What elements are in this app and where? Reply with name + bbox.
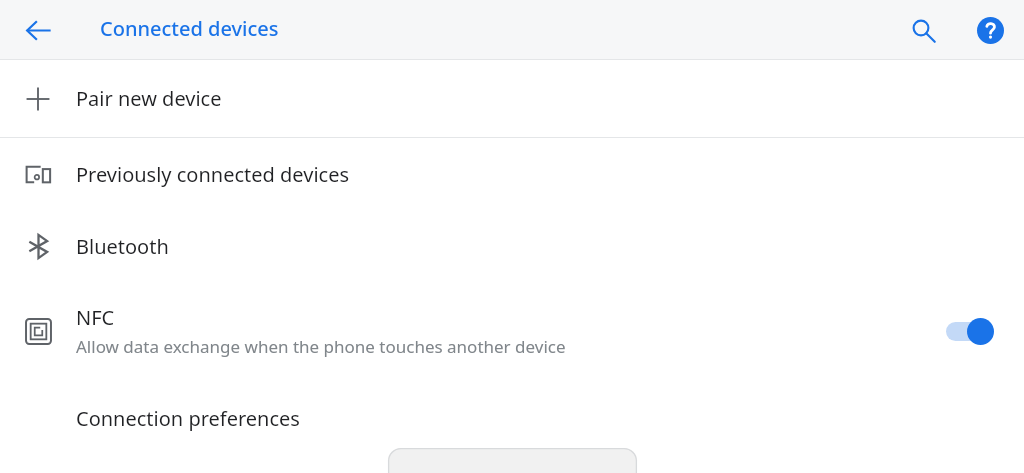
button[interactable]: Connection preferences: [0, 390, 1024, 446]
button[interactable]: Help: [966, 6, 1014, 54]
button[interactable]: Bluetooth: [0, 210, 1024, 282]
staticText: Connection preferences: [76, 405, 300, 432]
button[interactable]: Previously connected devices: [0, 138, 1024, 210]
staticText: Previously connected devices: [76, 161, 350, 188]
button[interactable]: Pair new device: [0, 60, 1024, 137]
button[interactable]: NFC switch, on: [938, 309, 1004, 353]
staticText: Connected devices: [100, 15, 279, 42]
button[interactable]: Search: [899, 6, 947, 54]
staticText: Pair new device: [76, 85, 222, 112]
button[interactable]: Back: [14, 6, 62, 54]
staticText: Allow data exchange when the phone touch…: [76, 335, 566, 358]
button[interactable]: NFC: [0, 289, 1024, 373]
staticText: NFC: [76, 304, 115, 331]
staticText: Bluetooth: [76, 233, 169, 260]
